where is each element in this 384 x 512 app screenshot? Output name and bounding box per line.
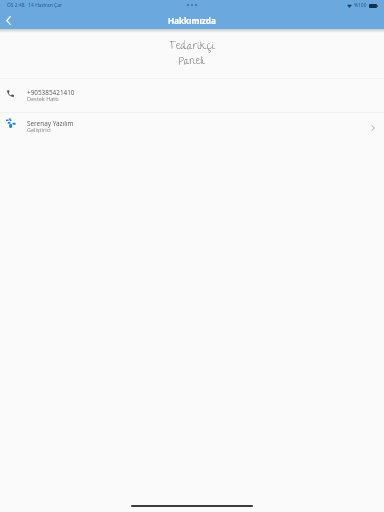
button[interactable]: Serenay Yazılım	[0, 113, 384, 146]
staticText: Geliştirici	[27, 126, 51, 133]
staticText: Serenay Yazılım	[27, 119, 74, 128]
staticText: +905385421410	[27, 88, 75, 97]
staticText: Tedarikçi Paneli	[0, 37, 384, 72]
staticText: ÖS 2:48 14 Haziran Çar	[7, 2, 62, 9]
button[interactable]: +905385421410	[0, 79, 384, 112]
staticText: Hakkımızda	[168, 15, 216, 26]
button[interactable]: Back	[0, 11, 20, 29]
staticText: %100	[354, 2, 367, 9]
staticText: Destek Hattı	[27, 95, 59, 102]
